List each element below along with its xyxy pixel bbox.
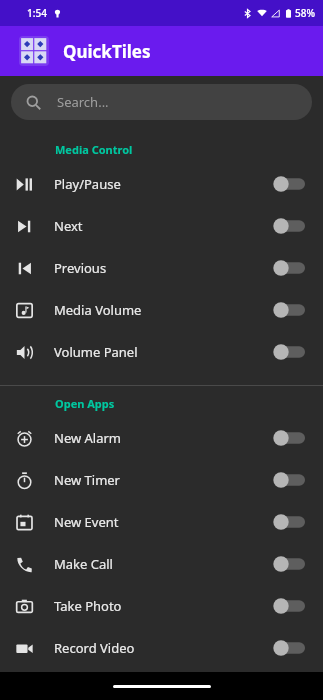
staticText: 58% <box>295 6 315 20</box>
staticText: Media Control <box>55 142 133 157</box>
button[interactable]: Toggle <box>273 260 305 276</box>
staticText: Media Volume <box>54 301 142 319</box>
button[interactable]: Toggle <box>273 430 305 446</box>
button[interactable]: Volume Panel <box>0 331 323 373</box>
staticText: Previous <box>54 259 107 277</box>
button[interactable]: Record Video <box>0 627 323 669</box>
button[interactable]: Toggle <box>273 598 305 614</box>
button[interactable]: Toggle <box>273 302 305 318</box>
button[interactable]: New Alarm <box>0 417 323 459</box>
button[interactable]: Search... <box>11 84 312 120</box>
button[interactable]: New Event <box>0 501 323 543</box>
staticText: Make Call <box>54 555 113 573</box>
button[interactable]: Toggle <box>273 514 305 530</box>
button[interactable]: Toggle <box>273 176 305 192</box>
button[interactable]: Toggle <box>273 640 305 656</box>
button[interactable]: Play/Pause <box>0 163 323 205</box>
button[interactable]: New Timer <box>0 459 323 501</box>
button[interactable]: Previous <box>0 247 323 289</box>
staticText: Search... <box>57 93 109 111</box>
button[interactable]: Toggle <box>273 218 305 234</box>
staticText: New Alarm <box>54 429 122 447</box>
staticText: Record Video <box>54 639 135 657</box>
staticText: New Timer <box>54 471 120 489</box>
button[interactable]: Make Call <box>0 543 323 585</box>
button[interactable]: Toggle <box>273 344 305 360</box>
staticText: Take Photo <box>54 597 122 615</box>
button[interactable]: Toggle <box>273 472 305 488</box>
staticText: Play/Pause <box>54 175 121 193</box>
staticText: Volume Panel <box>54 343 138 361</box>
staticText: 1:54 <box>27 6 47 20</box>
staticText: New Event <box>54 513 119 531</box>
button[interactable]: Media Volume <box>0 289 323 331</box>
button[interactable]: Take Photo <box>0 585 323 627</box>
staticText: Next <box>54 217 83 235</box>
staticText: QuickTiles <box>63 40 151 63</box>
button[interactable]: Next <box>0 205 323 247</box>
button[interactable]: Toggle <box>273 556 305 572</box>
staticText: Open Apps <box>55 396 115 411</box>
